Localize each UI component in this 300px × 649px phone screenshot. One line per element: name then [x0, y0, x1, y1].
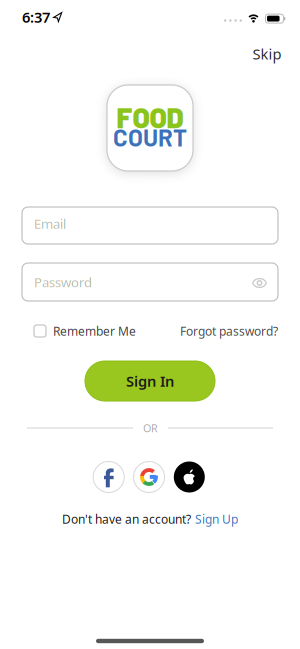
button[interactable]: Sign in with Apple — [174, 461, 205, 492]
button[interactable]: Sign In — [85, 361, 215, 401]
button[interactable]: Show password — [252, 278, 267, 288]
textField[interactable]: Password — [34, 273, 244, 291]
staticText: OR — [143, 421, 158, 435]
button[interactable]: Remember Me — [34, 323, 136, 339]
staticText: COURT — [113, 123, 187, 151]
textField[interactable]: Email — [34, 215, 278, 232]
staticText: Don't have an account? — [62, 511, 191, 527]
staticText: FOOD — [116, 100, 183, 134]
button[interactable]: Sign in with Facebook — [93, 461, 124, 492]
button[interactable]: Skip — [252, 44, 281, 64]
button[interactable]: Forgot password? — [180, 323, 278, 339]
staticText: Remember Me — [53, 323, 136, 339]
staticText: Forgot password? — [180, 323, 278, 339]
staticText: 6:37 — [22, 7, 50, 27]
staticText: Email — [34, 215, 66, 232]
staticText: Sign In — [126, 371, 174, 391]
staticText: Skip — [252, 44, 281, 64]
staticText: Password — [34, 273, 92, 291]
button[interactable]: Sign Up — [195, 511, 238, 527]
button[interactable]: Sign in with Google — [133, 461, 164, 492]
staticText: Sign Up — [195, 511, 238, 527]
